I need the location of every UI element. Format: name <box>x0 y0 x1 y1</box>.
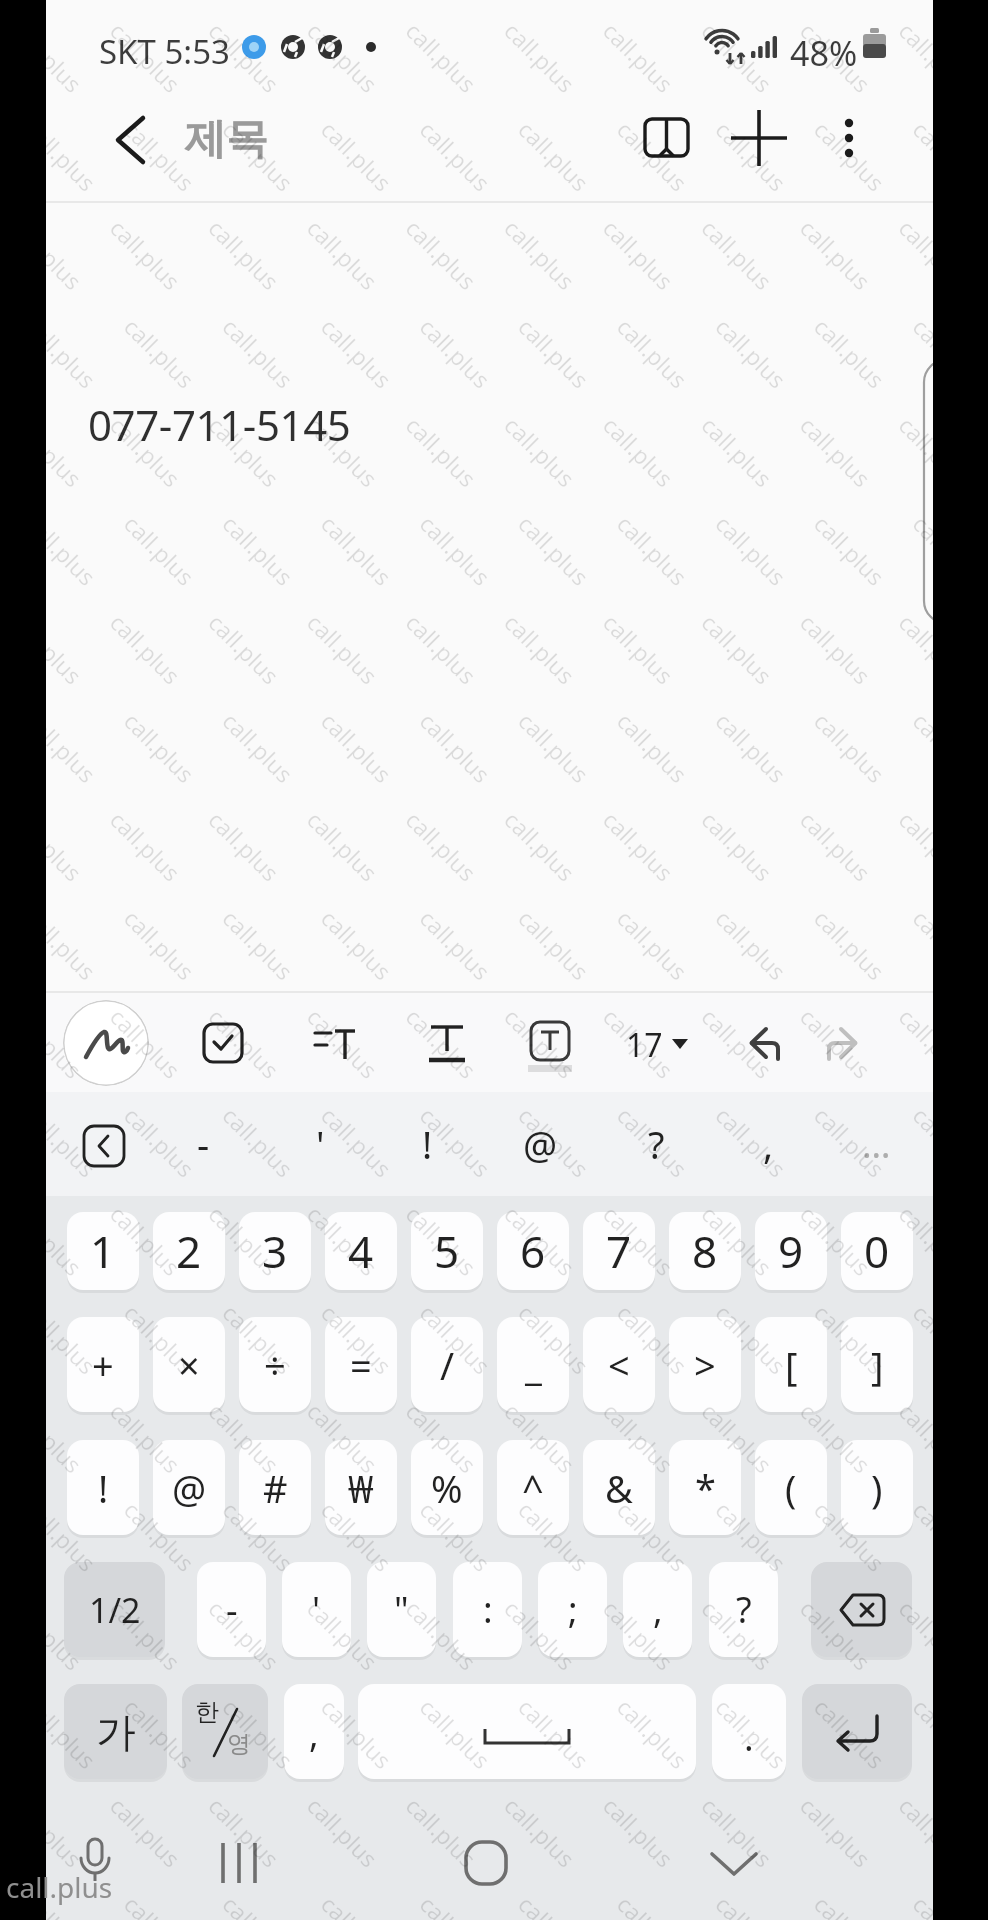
staticText: 9 <box>778 1221 804 1281</box>
button[interactable]: 9 <box>755 1212 827 1290</box>
staticText: … <box>862 1120 891 1169</box>
staticText: : <box>483 1585 493 1634</box>
staticText: × <box>178 1339 200 1391</box>
button[interactable]: 5 <box>411 1212 483 1290</box>
button[interactable] <box>729 1021 781 1065</box>
button[interactable] <box>827 110 871 166</box>
button[interactable] <box>638 110 694 166</box>
button[interactable] <box>826 1021 878 1065</box>
button[interactable]: " <box>367 1562 436 1657</box>
button[interactable]: % <box>411 1440 483 1535</box>
button[interactable]: 17 <box>612 1019 712 1067</box>
staticText: 6 <box>520 1221 546 1281</box>
button[interactable]: ÷ <box>239 1317 311 1412</box>
button[interactable]: ] <box>841 1317 913 1412</box>
button[interactable] <box>63 1000 149 1086</box>
staticText: 제목 <box>184 113 268 166</box>
button[interactable]: ^ <box>497 1440 569 1535</box>
button[interactable] <box>98 107 160 173</box>
button[interactable] <box>313 1021 357 1065</box>
staticText: ; <box>568 1585 578 1634</box>
staticText: ^ <box>522 1462 544 1514</box>
button[interactable]: > <box>669 1317 741 1412</box>
button[interactable]: = <box>325 1317 397 1412</box>
button[interactable]: 한 <box>182 1684 268 1779</box>
button[interactable]: , <box>623 1562 692 1657</box>
staticText: , <box>763 1118 774 1170</box>
button[interactable]: _ <box>497 1317 569 1412</box>
button[interactable]: , <box>284 1684 344 1779</box>
button[interactable] <box>73 1835 117 1891</box>
staticText: , <box>309 1709 319 1758</box>
button[interactable]: . <box>712 1684 786 1779</box>
staticText: = <box>350 1339 372 1391</box>
button[interactable] <box>462 1838 510 1888</box>
button[interactable]: : <box>453 1562 522 1657</box>
staticText: 7 <box>606 1221 632 1281</box>
button[interactable]: 8 <box>669 1212 741 1290</box>
button[interactable]: ' <box>282 1562 351 1657</box>
button[interactable]: @ <box>153 1440 225 1535</box>
staticText: ! <box>98 1462 109 1514</box>
button[interactable] <box>82 1124 126 1168</box>
button[interactable]: ' <box>293 1106 347 1182</box>
button[interactable]: 6 <box>497 1212 569 1290</box>
button[interactable]: 1/2 <box>64 1562 165 1657</box>
button[interactable]: … <box>846 1106 906 1182</box>
button[interactable] <box>358 1684 696 1779</box>
button[interactable]: # <box>239 1440 311 1535</box>
button[interactable]: 4 <box>325 1212 397 1290</box>
button[interactable]: ₩ <box>325 1440 397 1535</box>
staticText: * <box>695 1462 716 1514</box>
button[interactable]: ! <box>67 1440 139 1535</box>
button[interactable]: ? <box>629 1106 683 1182</box>
button[interactable]: & <box>583 1440 655 1535</box>
staticText: - <box>226 1585 238 1634</box>
staticText: 3 <box>262 1221 288 1281</box>
button[interactable] <box>201 1021 245 1065</box>
staticText: , <box>653 1585 663 1634</box>
button[interactable]: ! <box>400 1106 454 1182</box>
staticText: ' <box>312 1585 321 1634</box>
button[interactable]: 1 <box>67 1212 139 1290</box>
button[interactable]: ) <box>841 1440 913 1535</box>
staticText: 5 <box>434 1221 460 1281</box>
staticText: - <box>197 1118 210 1170</box>
staticText: ₩ <box>348 1462 374 1514</box>
button[interactable]: / <box>411 1317 483 1412</box>
staticText: ' <box>316 1118 325 1170</box>
button[interactable] <box>731 110 787 166</box>
button[interactable]: * <box>669 1440 741 1535</box>
staticText: 1 <box>90 1221 116 1281</box>
button[interactable]: 7 <box>583 1212 655 1290</box>
button[interactable]: [ <box>755 1317 827 1412</box>
button[interactable] <box>811 1562 912 1657</box>
button[interactable]: - <box>197 1562 266 1657</box>
button[interactable]: ( <box>755 1440 827 1535</box>
button[interactable]: 가 <box>64 1684 167 1779</box>
button[interactable]: @ <box>513 1106 567 1182</box>
button[interactable]: 3 <box>239 1212 311 1290</box>
button[interactable]: < <box>583 1317 655 1412</box>
staticText: + <box>92 1339 114 1391</box>
staticText: 17 <box>626 1023 663 1067</box>
button[interactable]: 0 <box>841 1212 913 1290</box>
button[interactable] <box>528 1019 572 1071</box>
button[interactable] <box>802 1684 912 1779</box>
button[interactable]: × <box>153 1317 225 1412</box>
staticText: < <box>608 1339 630 1391</box>
button[interactable] <box>706 1844 762 1884</box>
staticText: _ <box>525 1339 542 1391</box>
staticText: . <box>744 1713 754 1762</box>
button[interactable]: + <box>67 1317 139 1412</box>
staticText: @ <box>172 1462 207 1514</box>
button[interactable] <box>425 1021 469 1065</box>
button[interactable]: 2 <box>153 1212 225 1290</box>
staticText: 영 <box>227 1729 251 1759</box>
button[interactable]: , <box>741 1106 795 1182</box>
button[interactable]: ? <box>709 1562 778 1657</box>
staticText: 0 <box>864 1221 890 1281</box>
button[interactable] <box>209 1835 269 1891</box>
button[interactable]: - <box>176 1106 230 1182</box>
button[interactable]: ; <box>538 1562 607 1657</box>
